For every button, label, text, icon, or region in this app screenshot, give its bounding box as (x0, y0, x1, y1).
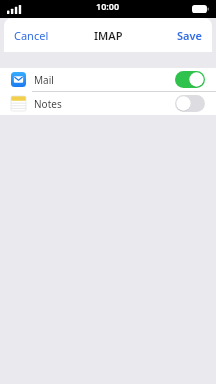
button[interactable]: On (175, 71, 205, 88)
staticText: Cancel (14, 28, 49, 43)
staticText: IMAP (94, 28, 123, 43)
staticText: Notes (34, 97, 62, 111)
staticText: Save (177, 28, 202, 43)
button[interactable]: Notes (0, 92, 216, 115)
staticText: 10:00 (96, 0, 120, 12)
button[interactable]: Cancel (4, 22, 59, 49)
button[interactable]: Mail (0, 68, 216, 91)
button[interactable]: Off (175, 95, 205, 112)
button[interactable]: Save (167, 22, 212, 49)
staticText: Mail (34, 73, 54, 87)
